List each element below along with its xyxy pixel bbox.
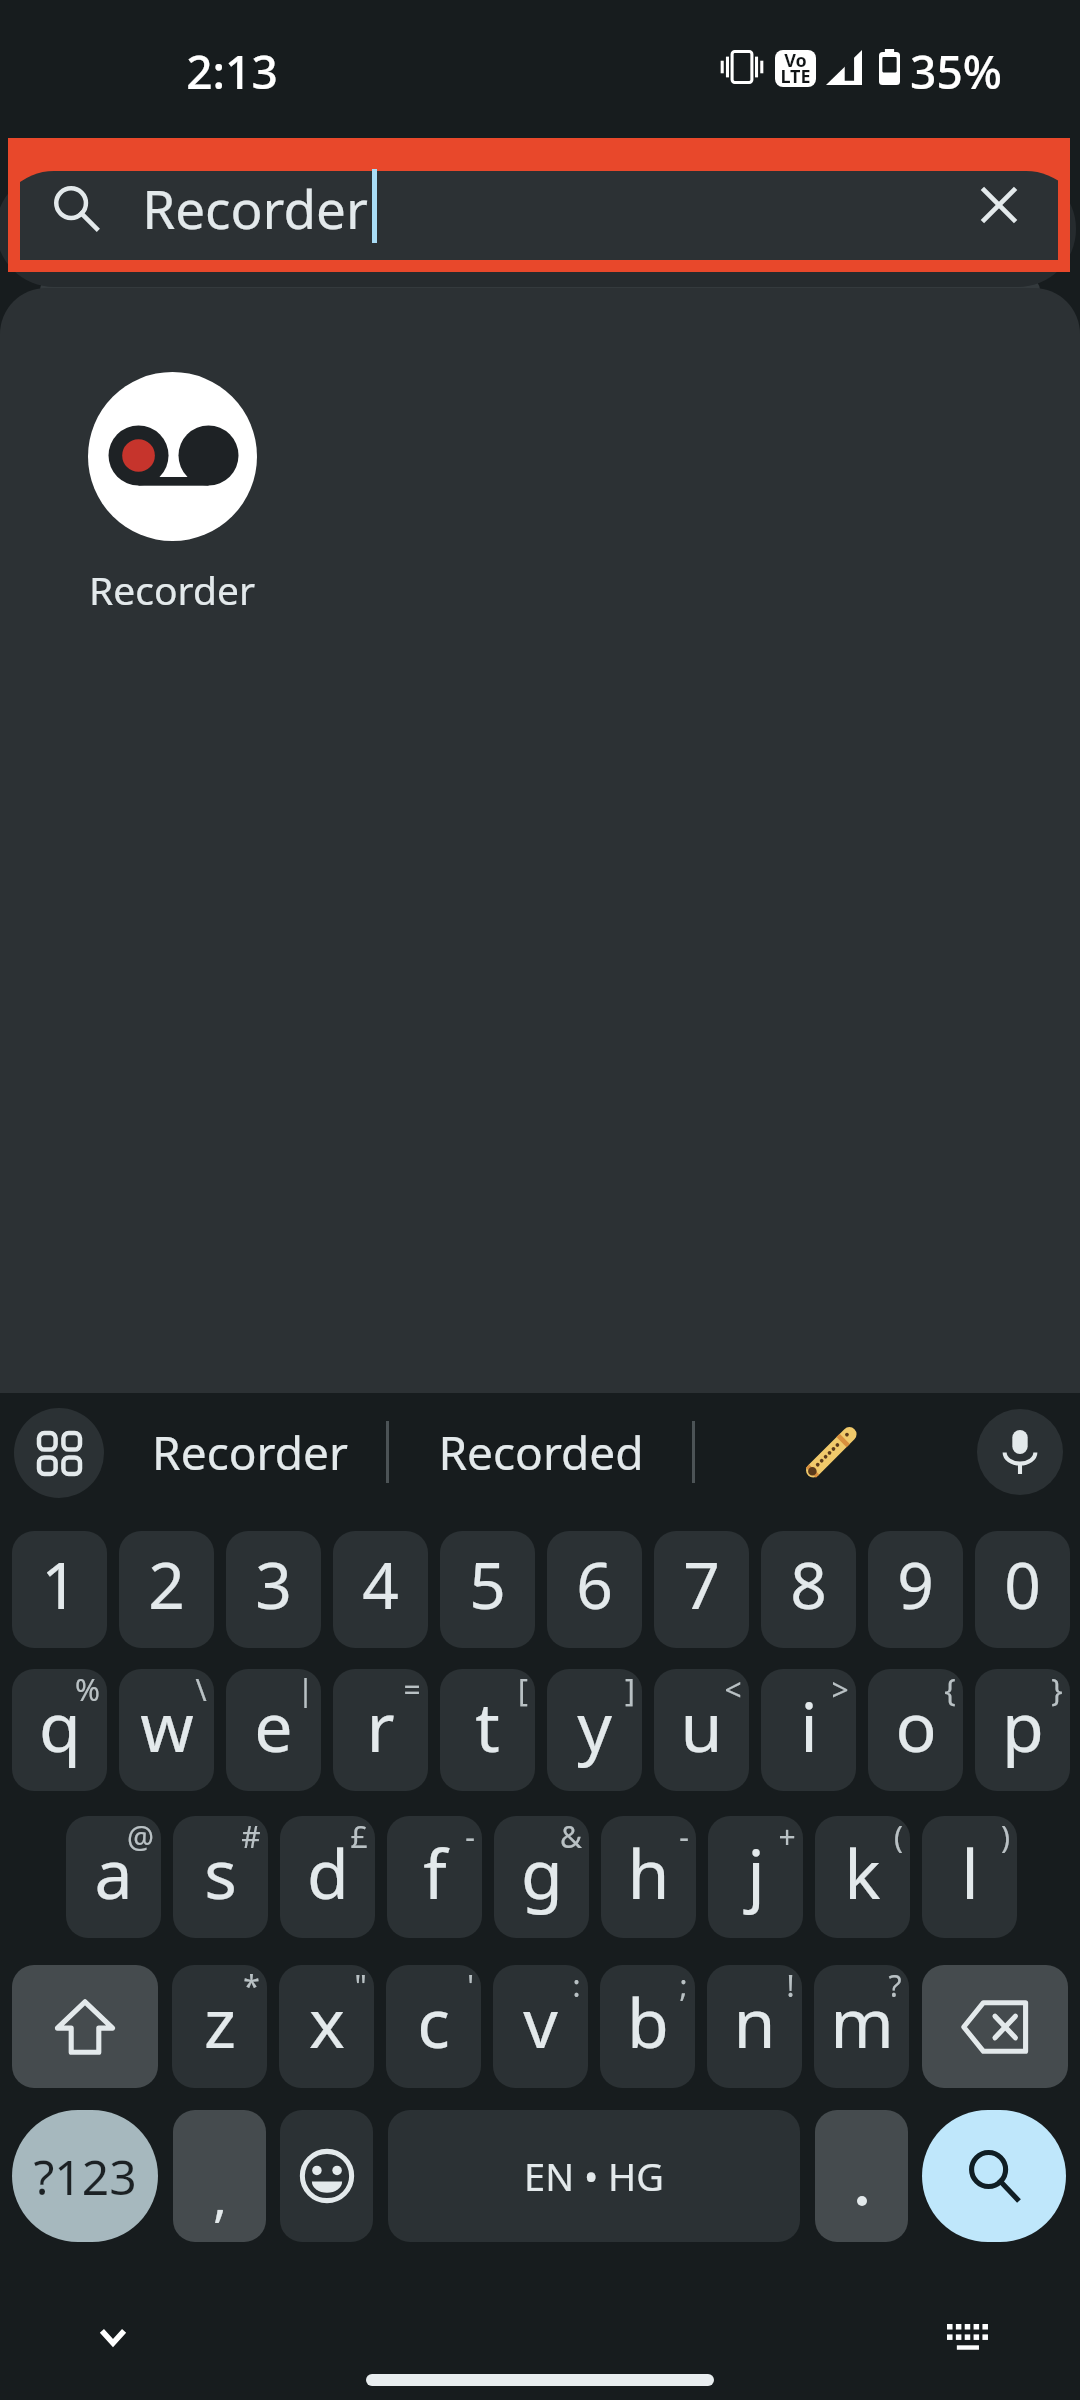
staticText: ( bbox=[894, 1816, 903, 1857]
staticText: g bbox=[521, 1826, 563, 1919]
button[interactable]: p bbox=[975, 1669, 1070, 1791]
staticText: m bbox=[830, 1975, 894, 2068]
staticText: : bbox=[572, 1965, 581, 2006]
button[interactable]: o bbox=[868, 1669, 963, 1791]
button[interactable]: a bbox=[66, 1816, 161, 1938]
button[interactable]: ?123 bbox=[12, 2110, 158, 2242]
button[interactable]: 5 bbox=[440, 1531, 535, 1648]
staticText: l bbox=[961, 1826, 979, 1919]
button[interactable]: Shift bbox=[12, 1965, 158, 2088]
button[interactable]: Recorded bbox=[400, 1393, 682, 1511]
staticText: ! bbox=[786, 1965, 795, 2006]
button[interactable]: e bbox=[226, 1669, 321, 1791]
staticText: ?123 bbox=[33, 2144, 137, 2209]
button[interactable]: Emoji bbox=[280, 2110, 373, 2242]
button[interactable]: 8 bbox=[761, 1531, 856, 1648]
staticText: h bbox=[627, 1826, 670, 1919]
staticText: \ bbox=[195, 1669, 207, 1710]
staticText: ] bbox=[625, 1669, 635, 1710]
staticText: 8 bbox=[790, 1541, 827, 1628]
button[interactable]: Recorder bbox=[120, 1393, 380, 1511]
staticText: z bbox=[204, 1975, 236, 2068]
button[interactable]: 2 bbox=[119, 1531, 214, 1648]
button[interactable]: f bbox=[387, 1816, 482, 1938]
button[interactable]: 4 bbox=[333, 1531, 428, 1648]
button[interactable]: Search bbox=[922, 2110, 1066, 2242]
staticText: 5 bbox=[469, 1541, 506, 1628]
staticText: ' bbox=[467, 1965, 474, 2006]
staticText: < bbox=[724, 1669, 742, 1710]
staticText: r bbox=[366, 1679, 395, 1772]
staticText: 2:13 bbox=[186, 40, 278, 103]
button[interactable]: z bbox=[172, 1965, 267, 2088]
button[interactable]: 1 bbox=[12, 1531, 107, 1648]
staticText: b bbox=[627, 1975, 669, 2068]
button[interactable]: Period bbox=[815, 2110, 908, 2242]
button[interactable]: y bbox=[547, 1669, 642, 1791]
staticText: e bbox=[254, 1679, 293, 1772]
button[interactable]: 0 bbox=[975, 1531, 1070, 1648]
staticText: 1 bbox=[41, 1541, 78, 1628]
button[interactable]: l bbox=[922, 1816, 1017, 1938]
staticText: @ bbox=[127, 1816, 154, 1857]
staticText: 2 bbox=[148, 1541, 185, 1628]
staticText: 35% bbox=[910, 40, 1002, 103]
staticText: a bbox=[94, 1826, 133, 1919]
staticText: ; bbox=[679, 1965, 688, 2006]
button[interactable]: 3 bbox=[226, 1531, 321, 1648]
button[interactable]: r bbox=[333, 1669, 428, 1791]
staticText: | bbox=[297, 1669, 314, 1710]
staticText: { bbox=[944, 1669, 956, 1710]
button[interactable]: Flute emoji suggestion bbox=[696, 1393, 966, 1511]
staticText: - bbox=[679, 1816, 689, 1857]
staticText: c bbox=[417, 1975, 450, 2068]
button[interactable]: Keyboard toolbar bbox=[14, 1408, 104, 1498]
staticText: 3 bbox=[255, 1541, 292, 1628]
button[interactable]: Recorder bbox=[20, 150, 1058, 260]
button[interactable]: 7 bbox=[654, 1531, 749, 1648]
staticText: 0 bbox=[1004, 1541, 1041, 1628]
button[interactable]: n bbox=[707, 1965, 802, 2088]
staticText: " bbox=[354, 1965, 367, 2006]
button[interactable]: u bbox=[654, 1669, 749, 1791]
staticText: * bbox=[243, 1965, 260, 2006]
button[interactable]: Comma bbox=[173, 2110, 266, 2242]
button[interactable]: g bbox=[494, 1816, 589, 1938]
button[interactable]: EN • HG bbox=[388, 2110, 800, 2242]
button[interactable]: Change keyboard bbox=[933, 2303, 1001, 2371]
staticText: v bbox=[523, 1975, 558, 2068]
button[interactable]: m bbox=[814, 1965, 909, 2088]
button[interactable]: 6 bbox=[547, 1531, 642, 1648]
button[interactable]: s bbox=[173, 1816, 268, 1938]
staticText: i bbox=[800, 1679, 818, 1772]
button[interactable]: c bbox=[386, 1965, 481, 2088]
staticText: [ bbox=[518, 1669, 528, 1710]
button[interactable]: Recorder bbox=[57, 372, 287, 616]
staticText: k bbox=[844, 1826, 881, 1919]
button[interactable]: v bbox=[493, 1965, 588, 2088]
staticText: Recorder bbox=[152, 1421, 348, 1484]
button[interactable]: 9 bbox=[868, 1531, 963, 1648]
staticText: - bbox=[465, 1816, 475, 1857]
button[interactable]: j bbox=[708, 1816, 803, 1938]
button[interactable]: d bbox=[280, 1816, 375, 1938]
staticText: , bbox=[213, 2160, 227, 2231]
button[interactable]: Hide keyboard bbox=[79, 2303, 147, 2371]
button[interactable]: t bbox=[440, 1669, 535, 1791]
button[interactable]: w bbox=[119, 1669, 214, 1791]
button[interactable]: x bbox=[279, 1965, 374, 2088]
staticText: & bbox=[560, 1816, 582, 1857]
staticText: 6 bbox=[576, 1541, 613, 1628]
button[interactable]: i bbox=[761, 1669, 856, 1791]
button[interactable]: h bbox=[601, 1816, 696, 1938]
staticText: # bbox=[241, 1816, 261, 1857]
button[interactable]: k bbox=[815, 1816, 910, 1938]
staticText: w bbox=[140, 1679, 194, 1772]
button[interactable]: Backspace bbox=[922, 1965, 1068, 2088]
button[interactable]: b bbox=[600, 1965, 695, 2088]
staticText: o bbox=[895, 1679, 937, 1772]
button[interactable]: Clear search bbox=[958, 164, 1040, 246]
button[interactable]: Voice input bbox=[977, 1409, 1063, 1495]
button[interactable]: q bbox=[12, 1669, 107, 1791]
staticText: f bbox=[423, 1826, 447, 1919]
